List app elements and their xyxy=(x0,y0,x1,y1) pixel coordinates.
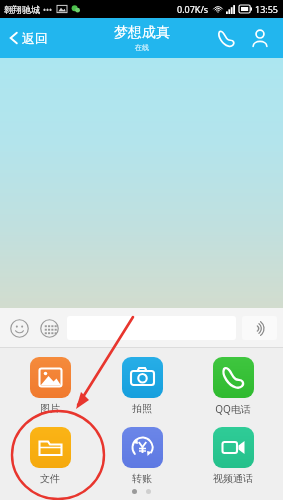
staticText: 文件 xyxy=(40,472,60,485)
staticText: 返回 xyxy=(22,30,48,46)
button[interactable]: 文件 xyxy=(9,425,91,487)
button[interactable]: Profile xyxy=(243,21,277,55)
staticText: 13:55 xyxy=(255,3,279,15)
button[interactable]: 视频通话 xyxy=(192,425,274,487)
button[interactable]: 转账 xyxy=(101,425,183,487)
button[interactable]: Keyboard xyxy=(36,315,62,341)
button[interactable]: Voice message xyxy=(242,316,277,340)
staticText: ••• xyxy=(43,4,53,15)
staticText: 拍照 xyxy=(132,402,152,415)
staticText: QQ电话 xyxy=(215,402,251,416)
button[interactable]: Message input xyxy=(67,316,236,340)
staticText: 梦想成真 xyxy=(114,24,170,42)
staticText: 转账 xyxy=(132,472,152,485)
button[interactable]: 图片 xyxy=(9,355,91,417)
button[interactable]: 返回 xyxy=(0,24,56,52)
staticText: 视频通话 xyxy=(213,472,253,485)
staticText: 在线 xyxy=(135,43,149,52)
staticText: 0.07K/s xyxy=(177,3,209,15)
button[interactable]: QQ电话 xyxy=(192,355,274,418)
staticText: 翱翔驰城 xyxy=(4,4,40,15)
button[interactable]: Emoji xyxy=(6,315,32,341)
button[interactable]: 拍照 xyxy=(101,355,183,417)
staticText: 图片 xyxy=(40,402,60,415)
button[interactable]: Call xyxy=(209,21,243,55)
